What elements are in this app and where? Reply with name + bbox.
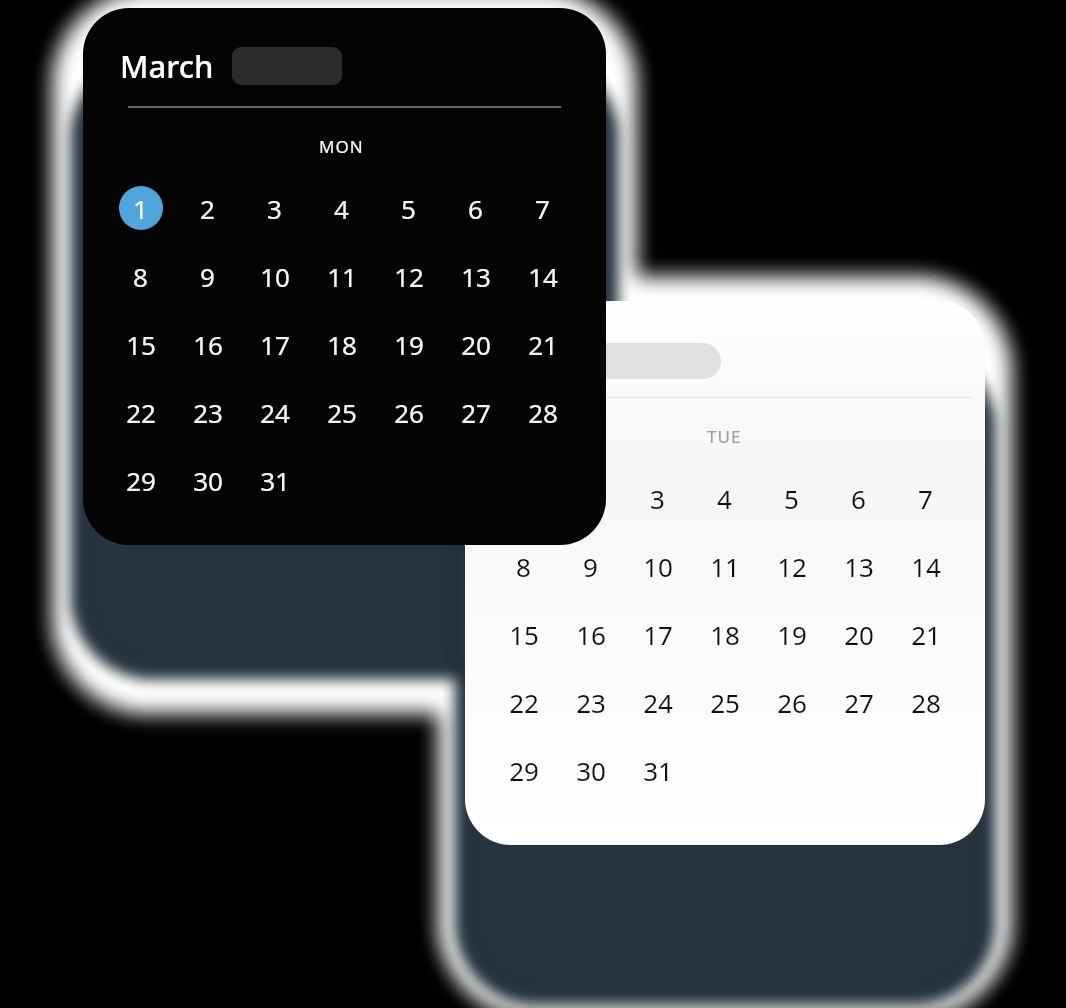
- button[interactable]: 9: [557, 532, 624, 600]
- button[interactable]: 5: [758, 464, 825, 532]
- staticText: 30: [193, 463, 223, 498]
- button[interactable]: 7: [509, 174, 576, 242]
- button[interactable]: 24: [241, 378, 308, 446]
- staticText: 6: [468, 191, 483, 226]
- staticText: 23: [576, 685, 606, 720]
- button[interactable]: 20: [442, 310, 509, 378]
- button[interactable]: 26: [375, 378, 442, 446]
- button[interactable]: 23: [174, 378, 241, 446]
- button[interactable]: 10: [241, 242, 308, 310]
- button[interactable]: 31: [624, 736, 691, 804]
- button[interactable]: 3: [624, 464, 691, 532]
- button[interactable]: 22: [490, 668, 557, 736]
- staticText: 14: [528, 259, 558, 294]
- button[interactable]: 26: [758, 668, 825, 736]
- button[interactable]: 2: [174, 174, 241, 242]
- staticText: 3: [650, 481, 665, 516]
- button[interactable]: 30: [174, 446, 241, 514]
- button[interactable]: 1: [107, 174, 174, 242]
- button[interactable]: 11: [308, 242, 375, 310]
- button[interactable]: 18: [308, 310, 375, 378]
- staticText: 29: [509, 753, 539, 788]
- button[interactable]: 21: [509, 310, 576, 378]
- button[interactable]: 27: [442, 378, 509, 446]
- button[interactable]: 10: [624, 532, 691, 600]
- button[interactable]: 14: [892, 532, 959, 600]
- button[interactable]: 30: [557, 736, 624, 804]
- staticText: 28: [528, 395, 558, 430]
- button[interactable]: Month selector: [475, 343, 721, 379]
- staticText: TUE: [707, 425, 742, 448]
- button[interactable]: 23: [557, 668, 624, 736]
- button[interactable]: 18: [691, 600, 758, 668]
- staticText: 18: [710, 617, 740, 652]
- button[interactable]: 28: [509, 378, 576, 446]
- button[interactable]: 8: [107, 242, 174, 310]
- button[interactable]: 29: [490, 736, 557, 804]
- button[interactable]: 4: [308, 174, 375, 242]
- button[interactable]: 17: [241, 310, 308, 378]
- staticText: 29: [126, 463, 156, 498]
- button[interactable]: 8: [490, 532, 557, 600]
- staticText: 6: [851, 481, 866, 516]
- button[interactable]: 7: [892, 464, 959, 532]
- button[interactable]: 24: [624, 668, 691, 736]
- staticText: 1: [133, 191, 148, 226]
- staticText: 14: [911, 549, 941, 584]
- staticText: 20: [844, 617, 874, 652]
- staticText: 17: [260, 327, 290, 362]
- button[interactable]: 20: [825, 600, 892, 668]
- button[interactable]: 12: [375, 242, 442, 310]
- button[interactable]: 16: [557, 600, 624, 668]
- button[interactable]: 25: [691, 668, 758, 736]
- button[interactable]: 3: [241, 174, 308, 242]
- staticText: 19: [394, 327, 424, 362]
- button[interactable]: 28: [892, 668, 959, 736]
- button[interactable]: 14: [509, 242, 576, 310]
- staticText: 8: [133, 259, 148, 294]
- button[interactable]: 6: [825, 464, 892, 532]
- button[interactable]: 16: [174, 310, 241, 378]
- button[interactable]: 9: [174, 242, 241, 310]
- button[interactable]: 25: [308, 378, 375, 446]
- button[interactable]: 5: [375, 174, 442, 242]
- button[interactable]: 13: [825, 532, 892, 600]
- staticText: 21: [911, 617, 941, 652]
- staticText: 15: [509, 617, 539, 652]
- button[interactable]: 31: [241, 446, 308, 514]
- button[interactable]: 29: [107, 446, 174, 514]
- button[interactable]: 21: [892, 600, 959, 668]
- staticText: 8: [516, 549, 531, 584]
- staticText: 25: [327, 395, 357, 430]
- button[interactable]: [557, 464, 624, 532]
- button[interactable]: 19: [758, 600, 825, 668]
- button[interactable]: 13: [442, 242, 509, 310]
- staticText: 10: [260, 259, 290, 294]
- button[interactable]: 15: [107, 310, 174, 378]
- button[interactable]: 17: [624, 600, 691, 668]
- staticText: 31: [260, 463, 290, 498]
- staticText: 21: [528, 327, 558, 362]
- staticText: 24: [260, 395, 290, 430]
- button[interactable]: 6: [442, 174, 509, 242]
- button[interactable]: 11: [691, 532, 758, 600]
- staticText: 17: [643, 617, 673, 652]
- button[interactable]: 4: [691, 464, 758, 532]
- button[interactable]: 19: [375, 310, 442, 378]
- button[interactable]: 27: [825, 668, 892, 736]
- staticText: 7: [535, 191, 550, 226]
- button[interactable]: 15: [490, 600, 557, 668]
- button[interactable]: 22: [107, 378, 174, 446]
- button[interactable]: Year selector: [232, 47, 342, 85]
- button[interactable]: 12: [758, 532, 825, 600]
- staticText: 12: [777, 549, 807, 584]
